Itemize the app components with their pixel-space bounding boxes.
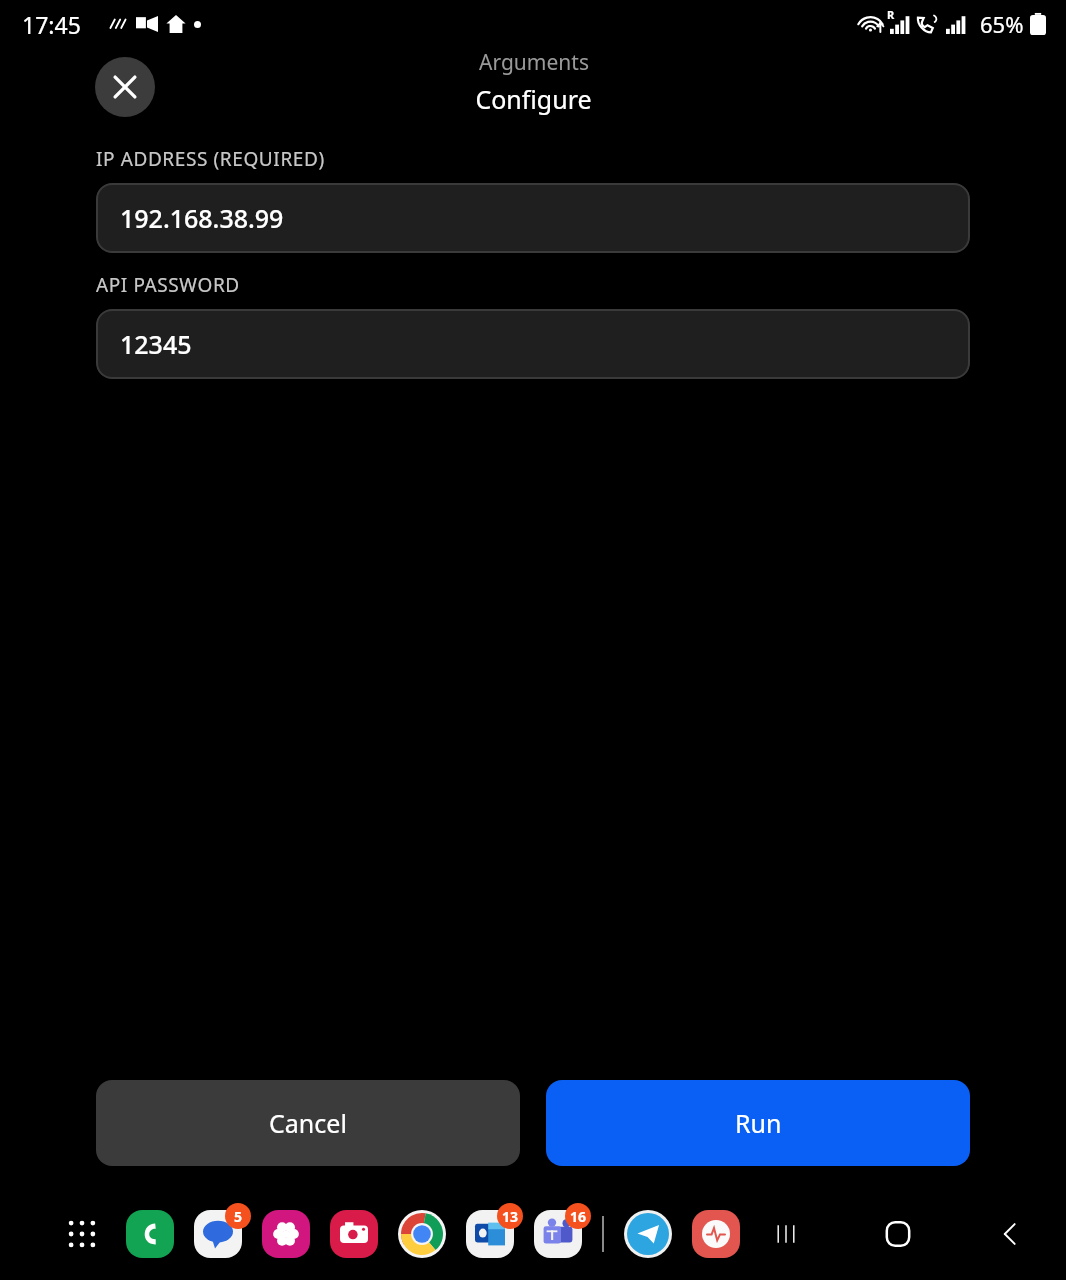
button[interactable]: Teams [534,1210,582,1258]
staticText: API PASSWORD [96,272,240,298]
button[interactable]: Run [546,1080,970,1166]
button[interactable]: Messages [194,1210,242,1258]
button[interactable]: Health [692,1210,740,1258]
staticText: 17:45 [22,9,81,40]
button[interactable]: Phone [126,1210,174,1258]
staticText: 12345 [120,327,192,361]
button[interactable]: 192.168.38.99 [96,183,970,253]
staticText: 16 [570,1207,587,1226]
staticText: 13 [502,1207,519,1226]
button[interactable]: Close [95,57,155,117]
button[interactable]: Telegram [624,1210,672,1258]
staticText: Run [735,1106,782,1140]
staticText: 192.168.38.99 [120,201,284,235]
button[interactable]: Camera [330,1210,378,1258]
button[interactable]: Apps [58,1210,106,1258]
staticText: Arguments [479,48,589,77]
staticText: 5 [234,1207,243,1226]
button[interactable]: Cancel [96,1080,520,1166]
button[interactable]: Home [872,1208,924,1260]
staticText: 65% [980,9,1024,39]
button[interactable]: Chrome [398,1210,446,1258]
staticText: Configure [475,82,592,116]
button[interactable]: Gallery [262,1210,310,1258]
staticText: R [887,7,895,22]
staticText: Cancel [269,1106,347,1140]
button[interactable]: Back [984,1208,1036,1260]
button[interactable]: Outlook [466,1210,514,1258]
staticText: IP ADDRESS (REQUIRED) [96,146,325,172]
button[interactable]: Recents [760,1208,812,1260]
button[interactable]: 12345 [96,309,970,379]
